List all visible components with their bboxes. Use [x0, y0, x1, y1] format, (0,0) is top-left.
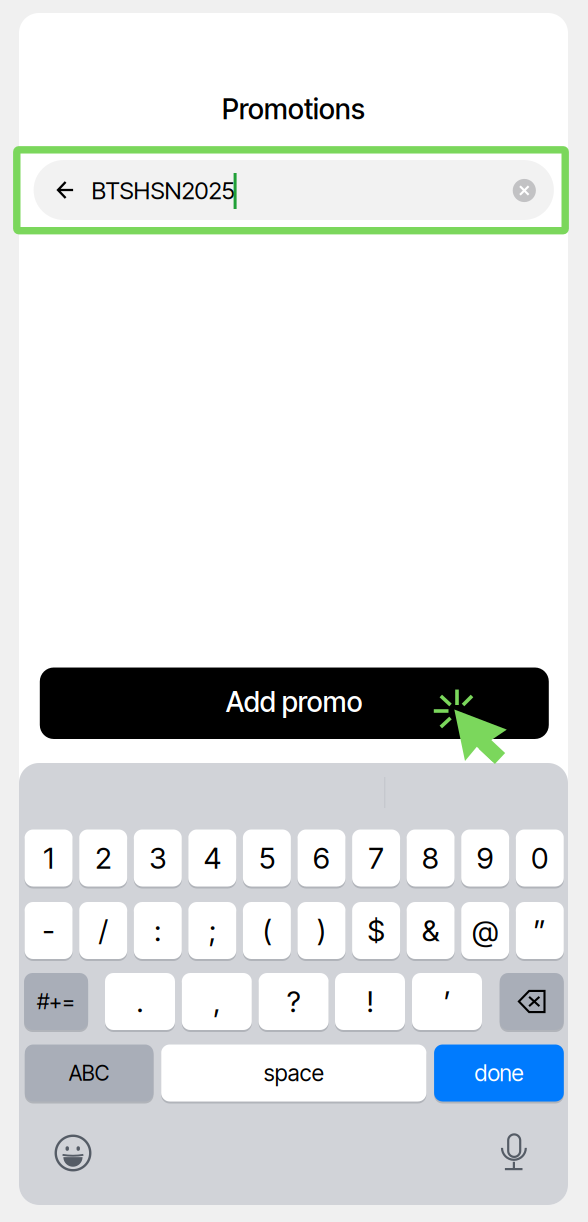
- staticText: 9: [477, 840, 494, 876]
- button[interactable]: ”: [516, 900, 564, 961]
- staticText: @: [472, 913, 498, 948]
- staticText: (: [262, 913, 271, 948]
- staticText: 1: [44, 840, 54, 876]
- button[interactable]: Dictation: [490, 1126, 538, 1178]
- button[interactable]: 4: [188, 827, 236, 888]
- button[interactable]: ,: [182, 971, 252, 1032]
- button[interactable]: &: [407, 900, 455, 961]
- staticText: #+=: [37, 989, 75, 1014]
- staticText: 0: [531, 840, 548, 876]
- button[interactable]: .: [105, 971, 175, 1032]
- button[interactable]: 0: [516, 827, 564, 888]
- staticText: ): [317, 913, 326, 948]
- staticText: done: [474, 1059, 523, 1087]
- staticText: ,: [213, 984, 220, 1019]
- button[interactable]: Clear text: [502, 168, 546, 212]
- staticText: 2: [95, 840, 111, 876]
- staticText: 3: [149, 840, 166, 876]
- button[interactable]: :: [134, 900, 182, 961]
- staticText: :: [154, 913, 161, 948]
- staticText: Add promo: [226, 685, 363, 719]
- staticText: ABC: [69, 1060, 110, 1086]
- button[interactable]: Backspace: [500, 971, 564, 1032]
- button[interactable]: 6: [297, 827, 345, 888]
- button[interactable]: space: [161, 1042, 426, 1103]
- staticText: 8: [422, 840, 439, 876]
- staticText: 6: [313, 840, 330, 876]
- button[interactable]: ;: [188, 900, 236, 961]
- staticText: .: [136, 984, 143, 1019]
- button[interactable]: $: [352, 900, 400, 961]
- button[interactable]: 2: [79, 827, 127, 888]
- button[interactable]: ’: [412, 971, 482, 1032]
- button[interactable]: 1: [25, 827, 73, 888]
- button[interactable]: 5: [243, 827, 291, 888]
- staticText: space: [264, 1059, 324, 1087]
- button[interactable]: Add promo: [40, 667, 549, 739]
- button[interactable]: 3: [134, 827, 182, 888]
- staticText: -: [43, 913, 55, 948]
- button[interactable]: !: [335, 971, 405, 1032]
- staticText: !: [366, 984, 373, 1019]
- staticText: 5: [259, 840, 275, 876]
- staticText: $: [368, 913, 385, 948]
- staticText: 4: [204, 840, 221, 876]
- staticText: BTSHSN2025: [92, 176, 235, 205]
- staticText: ;: [209, 913, 216, 948]
- button[interactable]: #+=: [24, 971, 88, 1032]
- button[interactable]: 9: [461, 827, 509, 888]
- staticText: ”: [533, 913, 546, 948]
- staticText: ’: [443, 984, 450, 1019]
- staticText: 7: [369, 840, 384, 876]
- staticText: &: [422, 913, 439, 948]
- button[interactable]: ): [297, 900, 345, 961]
- button[interactable]: 8: [407, 827, 455, 888]
- staticText: Promotions: [222, 92, 365, 126]
- button[interactable]: done: [434, 1042, 564, 1103]
- button[interactable]: Back: [45, 168, 87, 212]
- button[interactable]: ?: [259, 971, 329, 1032]
- staticText: /: [99, 913, 108, 948]
- button[interactable]: @: [461, 900, 509, 961]
- button[interactable]: -: [25, 900, 73, 961]
- button[interactable]: Emoji keyboard: [47, 1127, 99, 1179]
- button[interactable]: (: [243, 900, 291, 961]
- button[interactable]: 7: [352, 827, 400, 888]
- button[interactable]: /: [79, 900, 127, 961]
- staticText: ?: [287, 984, 300, 1019]
- button[interactable]: ABC: [25, 1042, 153, 1103]
